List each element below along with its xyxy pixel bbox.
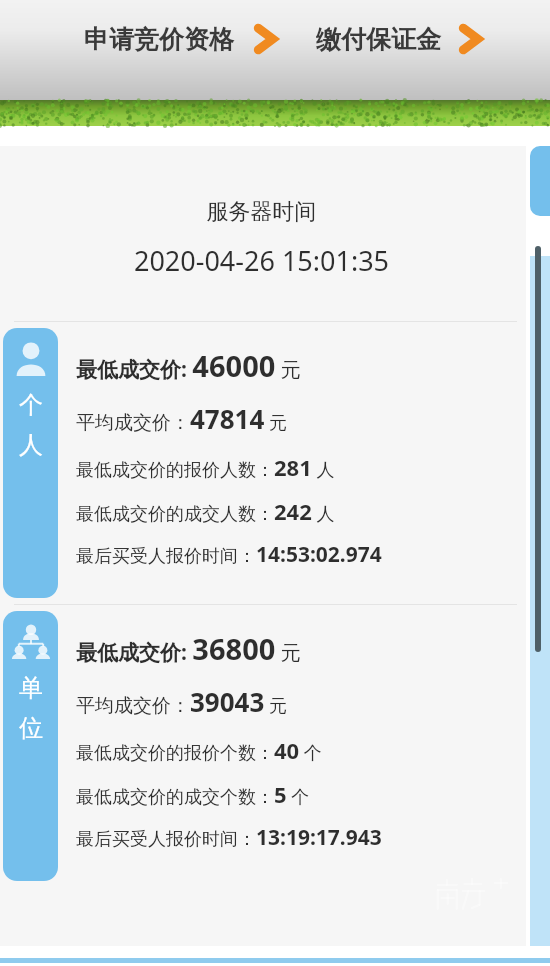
- staticText: 单: [19, 673, 43, 703]
- staticText: 申请竞价资格: [84, 24, 234, 55]
- staticText: 2020-04-26 15:01:35: [0, 242, 523, 279]
- staticText: 最低成交价的成交人数：242 人: [76, 496, 335, 526]
- button[interactable]: 申请竞价资格: [84, 22, 278, 56]
- staticText: 缴付保证金: [316, 24, 441, 55]
- staticText: 最低成交价: 36800 元: [76, 629, 301, 668]
- button[interactable]: Individual: [3, 328, 58, 598]
- staticText: 最后买受人报价时间：13:19:17.943: [76, 823, 382, 852]
- staticText: 人: [19, 430, 43, 460]
- staticText: 平均成交价：39043 元: [76, 684, 288, 719]
- staticText: 最低成交价的成交个数：5 个: [76, 779, 310, 809]
- staticText: 最后买受人报价时间：14:53:02.974: [76, 540, 382, 569]
- staticText: 最低成交价: 46000 元: [76, 346, 301, 385]
- button[interactable]: Organization: [3, 611, 58, 881]
- staticText: 最低成交价的报价个数：40 个: [76, 735, 322, 765]
- other: Next step: [252, 22, 278, 56]
- button[interactable]: 缴付保证金: [316, 22, 483, 56]
- staticText: 平均成交价：47814 元: [76, 401, 288, 436]
- staticText: 服务器时间: [0, 198, 523, 226]
- other: Organization: [13, 625, 49, 659]
- other: Next step: [457, 22, 483, 56]
- staticText: 位: [19, 713, 43, 743]
- staticText: 个: [19, 390, 43, 420]
- other: Individual: [13, 342, 49, 376]
- staticText: 最低成交价的报价人数：281 人: [76, 452, 335, 482]
